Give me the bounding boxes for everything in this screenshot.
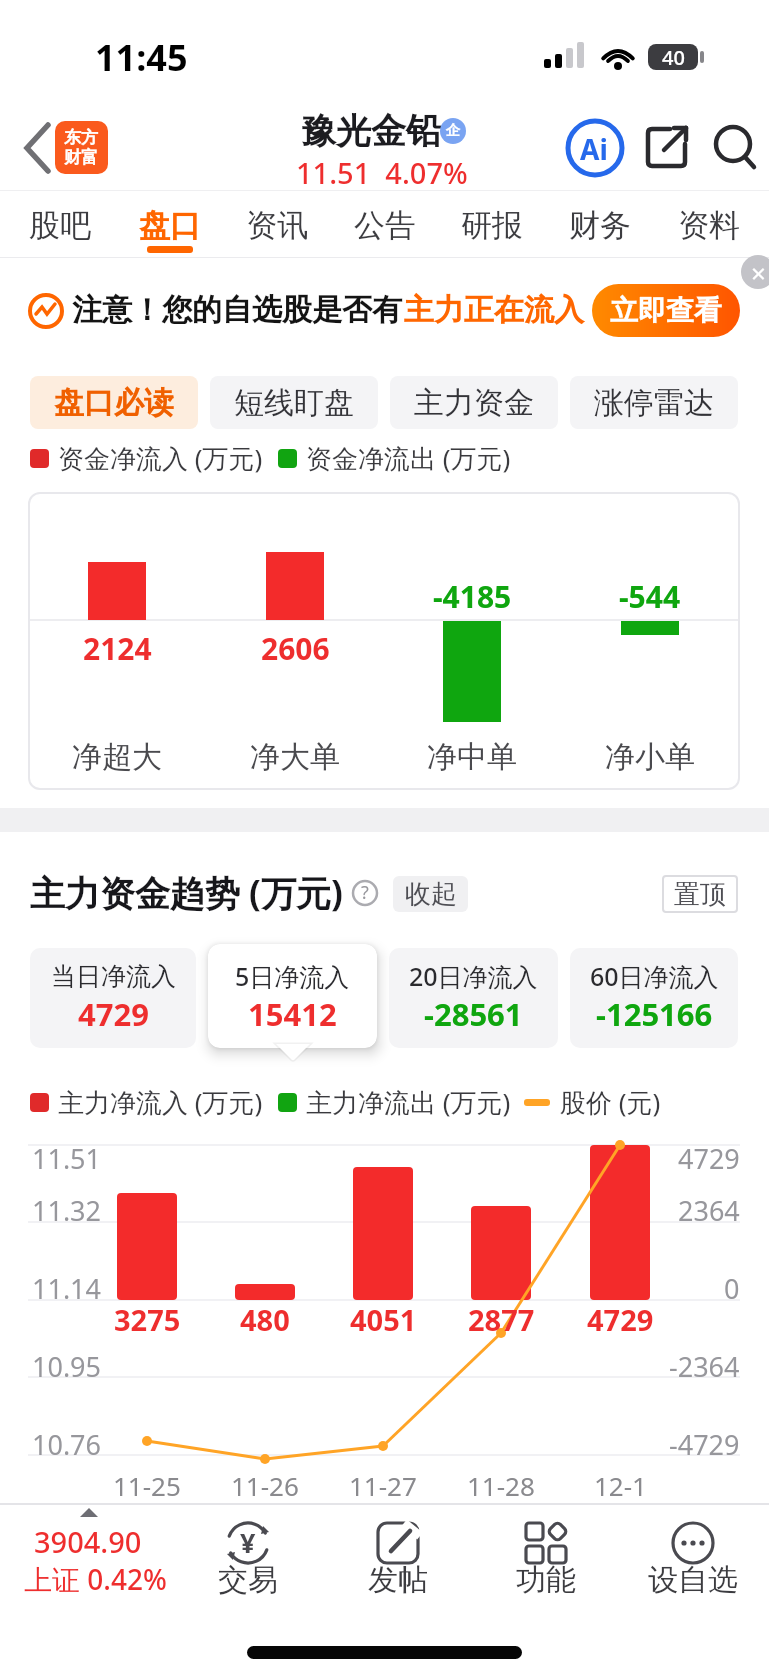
button[interactable]: 收起: [393, 876, 468, 912]
staticText: 盘口: [139, 206, 201, 245]
staticText: 豫光金铅: [301, 109, 441, 153]
staticText: 11.14: [32, 1270, 102, 1307]
staticText: 研报: [461, 206, 523, 245]
staticText: 480: [240, 1300, 290, 1339]
button[interactable]: [55, 121, 108, 174]
button[interactable]: 研报: [442, 196, 542, 254]
button[interactable]: [478, 1505, 618, 1605]
staticText: 0: [724, 1270, 740, 1307]
button[interactable]: 盘口必读: [30, 376, 198, 429]
staticText: 净超大: [72, 738, 162, 776]
staticText: -4185: [433, 576, 512, 617]
staticText: 净小单: [605, 738, 695, 776]
staticText: 公告: [354, 206, 416, 245]
staticText: ¥: [240, 1524, 256, 1561]
staticText: 主力净流入 (万元): [58, 1084, 263, 1120]
staticText: 资料: [678, 206, 740, 245]
staticText: 2877: [468, 1300, 535, 1339]
staticText: 12-1: [594, 1468, 647, 1503]
staticText: 当日净流入: [51, 961, 176, 992]
staticText: 11-28: [467, 1468, 535, 1503]
button[interactable]: [180, 1505, 320, 1605]
staticText: 收起: [405, 878, 457, 911]
staticText: 发帖: [368, 1561, 428, 1599]
button[interactable]: 主力资金: [390, 376, 558, 429]
button[interactable]: [712, 124, 760, 172]
button[interactable]: 涨停雷达: [570, 376, 738, 429]
staticText: 4729: [78, 993, 149, 1035]
staticText: 3904.90: [34, 1522, 142, 1561]
button[interactable]: 资料: [659, 196, 759, 254]
button[interactable]: [570, 948, 738, 1048]
staticText: 11-26: [231, 1468, 299, 1503]
staticText: 立即查看: [610, 293, 722, 328]
button[interactable]: 盘口: [120, 196, 220, 254]
staticText: 主力资金: [414, 384, 534, 422]
button[interactable]: [565, 118, 625, 178]
button[interactable]: 股吧: [10, 196, 110, 254]
staticText: -28561: [424, 993, 523, 1035]
staticText: 20日净流入: [409, 959, 538, 993]
staticText: 15412: [248, 993, 337, 1035]
button[interactable]: 立即查看: [592, 284, 740, 337]
staticText: 涨停雷达: [594, 384, 714, 422]
staticText: 5日净流入: [235, 959, 350, 993]
staticText: 企: [446, 122, 460, 140]
staticText: 11-25: [113, 1468, 181, 1503]
staticText: 盘口必读: [54, 384, 174, 422]
staticText: 置顶: [674, 878, 726, 911]
staticText: Ai: [580, 130, 608, 168]
button[interactable]: [644, 124, 692, 172]
staticText: 交易: [218, 1561, 278, 1599]
staticText: 财富: [64, 147, 98, 168]
staticText: 财务: [569, 206, 631, 245]
button[interactable]: [389, 948, 558, 1048]
staticText: 股价 (元): [560, 1084, 661, 1120]
staticText: 东方: [64, 127, 98, 148]
staticText: 11.51: [32, 1140, 102, 1177]
staticText: 设自选: [648, 1561, 738, 1599]
staticText: 60日净流入: [590, 959, 719, 993]
staticText: 净大单: [250, 738, 340, 776]
staticText: 2364: [678, 1192, 740, 1229]
staticText: 4729: [678, 1140, 740, 1177]
staticText: 40: [662, 44, 685, 71]
staticText: 主力净流出 (万元): [306, 1084, 511, 1120]
staticText: 上证 0.42%: [24, 1560, 167, 1598]
staticText: 3275: [114, 1300, 181, 1339]
staticText: 4051: [350, 1300, 417, 1339]
button[interactable]: [10, 1505, 180, 1605]
staticText: 股吧: [29, 206, 91, 245]
button[interactable]: 置顶: [662, 875, 738, 913]
button[interactable]: 短线盯盘: [210, 376, 378, 429]
staticText: 净中单: [427, 738, 517, 776]
button[interactable]: [208, 944, 377, 1048]
staticText: 2606: [261, 628, 330, 669]
staticText: 4729: [587, 1300, 654, 1339]
staticText: 10.76: [32, 1426, 102, 1463]
staticText: 11.51 4.07%: [296, 153, 468, 192]
staticText: 资金净流入 (万元): [58, 440, 263, 476]
staticText: -2364: [669, 1348, 740, 1385]
staticText: 资讯: [246, 206, 308, 245]
staticText: 短线盯盘: [234, 384, 354, 422]
button[interactable]: [330, 1505, 470, 1605]
button[interactable]: 财务: [550, 196, 650, 254]
button[interactable]: ×: [741, 255, 769, 289]
button[interactable]: [8, 118, 60, 178]
button[interactable]: 资讯: [227, 196, 327, 254]
staticText: 功能: [516, 1561, 576, 1599]
staticText: 11-27: [349, 1468, 417, 1503]
button[interactable]: [30, 948, 196, 1048]
button[interactable]: 公告: [335, 196, 435, 254]
staticText: -4729: [669, 1426, 740, 1463]
staticText: ×: [751, 255, 766, 289]
staticText: 2124: [83, 628, 152, 669]
staticText: 11:45: [95, 33, 188, 82]
staticText: 11.32: [32, 1192, 102, 1229]
staticText: 10.95: [32, 1348, 102, 1385]
staticText: 主力正在流入: [404, 291, 584, 329]
staticText: ?: [361, 880, 369, 905]
staticText: -544: [619, 576, 681, 617]
button[interactable]: [620, 1505, 765, 1605]
